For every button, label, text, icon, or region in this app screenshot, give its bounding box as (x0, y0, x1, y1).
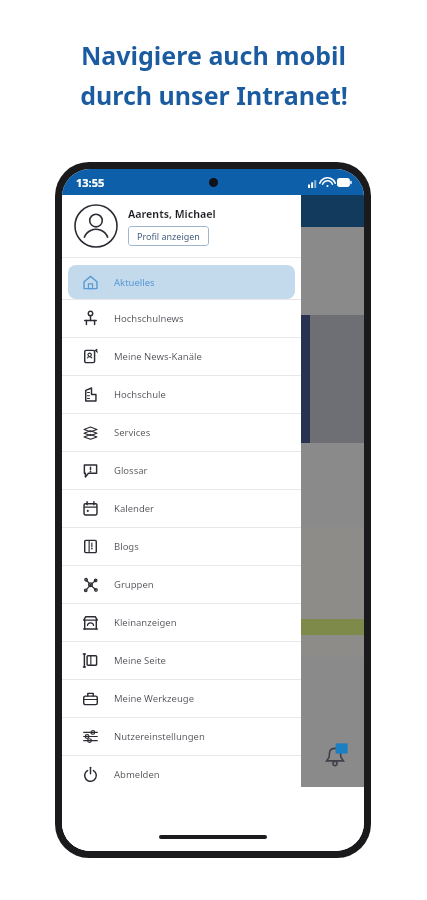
staticText: Kalender (114, 502, 155, 515)
staticText: Navigiere auch mobil (81, 38, 346, 72)
staticText: Meine Seite (114, 654, 166, 667)
staticText: Glossar (114, 464, 148, 477)
staticText: Kleinanzeigen (114, 616, 177, 629)
button[interactable]: Kalender (62, 490, 301, 527)
staticText: Meine News-Kanäle (114, 350, 202, 363)
button[interactable]: Gruppen (62, 566, 301, 603)
staticText: Gruppen (114, 578, 154, 591)
button[interactable]: Hochschule (62, 376, 301, 413)
staticText: Aktuelles (114, 276, 155, 289)
button[interactable]: Abmelden (62, 756, 301, 793)
button[interactable]: Aktuelles (68, 265, 295, 299)
staticText: Meine Werkzeuge (114, 692, 195, 705)
button[interactable]: Benachrichtigungen (320, 741, 350, 771)
button[interactable]: Aarents, Michael (74, 195, 301, 257)
button[interactable]: Meine Seite (62, 642, 301, 679)
staticText: Abmelden (114, 768, 160, 781)
button[interactable]: Blogs (62, 528, 301, 565)
button[interactable]: Meine News-Kanäle (62, 338, 301, 375)
staticText: Aarents, Michael (128, 207, 216, 221)
staticText: Profil anzeigen (137, 230, 200, 242)
button[interactable]: Glossar (62, 452, 301, 489)
button[interactable]: Hochschulnews (62, 300, 301, 337)
button[interactable]: Services (62, 414, 301, 451)
staticText: Nutzereinstellungen (114, 730, 205, 743)
button[interactable]: Nutzereinstellungen (62, 718, 301, 755)
button[interactable]: Profil anzeigen (128, 226, 209, 246)
staticText: Hochschule (114, 388, 166, 401)
staticText: Hochschulnews (114, 312, 184, 325)
staticText: durch unser Intranet! (80, 78, 348, 112)
staticText: 13:55 (76, 175, 105, 190)
staticText: Services (114, 426, 151, 439)
button[interactable]: Kleinanzeigen (62, 604, 301, 641)
button[interactable]: Meine Werkzeuge (62, 680, 301, 717)
staticText: Blogs (114, 540, 139, 553)
